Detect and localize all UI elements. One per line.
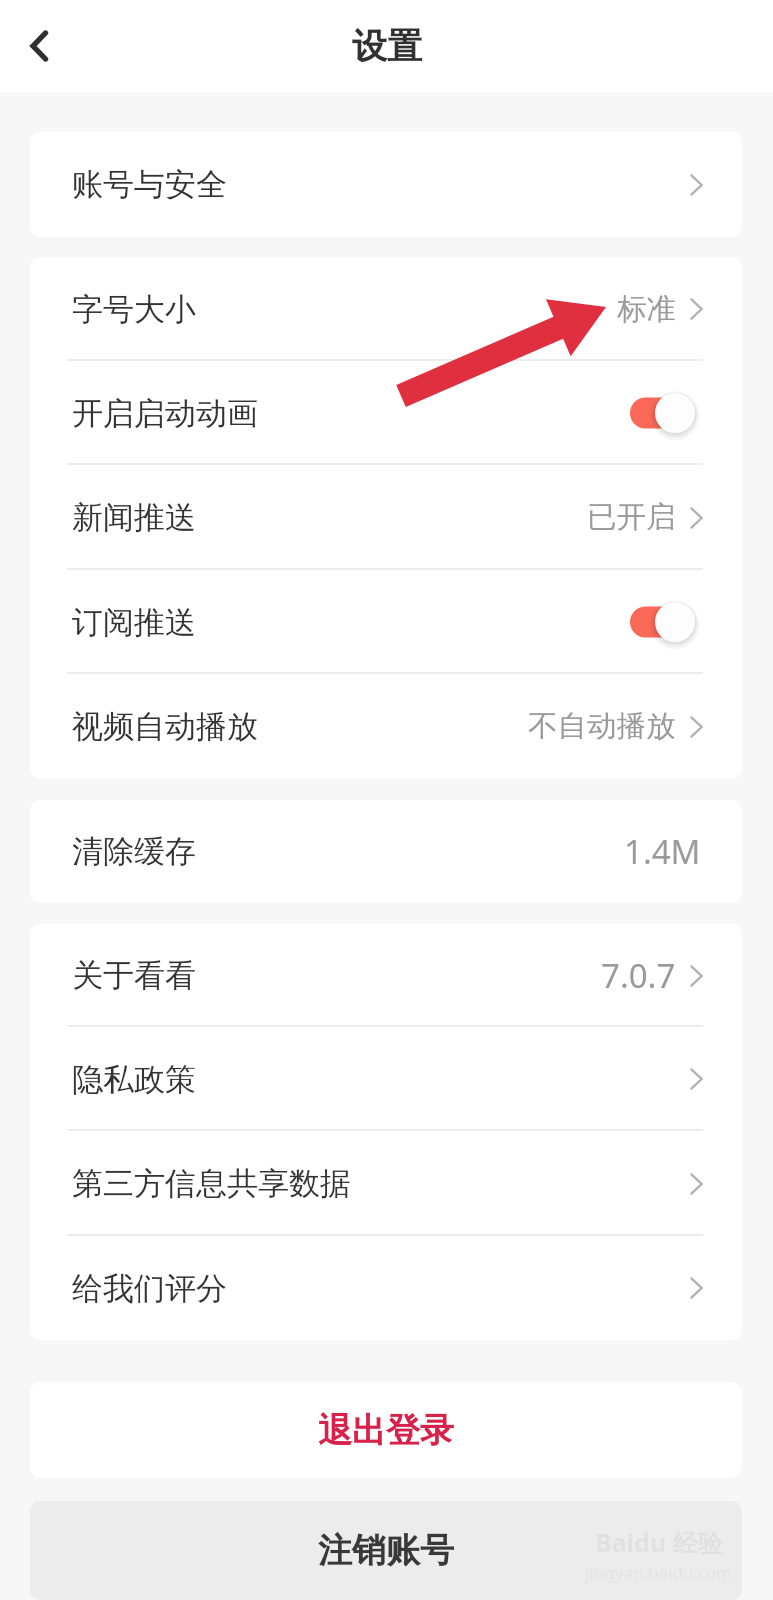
staticText: 清除缓存 xyxy=(72,832,196,871)
button[interactable]: 隐私政策 xyxy=(30,1027,742,1131)
staticText: 账号与安全 xyxy=(72,165,227,204)
button[interactable]: 视频自动播放 xyxy=(30,674,742,779)
button[interactable]: 清除缓存 xyxy=(30,800,742,903)
staticText: Baidu 经验 xyxy=(595,1525,723,1559)
staticText: 标准 xyxy=(617,291,676,328)
staticText: 已开启 xyxy=(587,499,676,536)
staticText: 开启启动动画 xyxy=(72,394,258,433)
staticText: 第三方信息共享数据 xyxy=(72,1164,351,1203)
staticText: 字号大小 xyxy=(72,290,196,329)
staticText: 给我们评分 xyxy=(72,1269,227,1308)
button[interactable]: 订阅推送 xyxy=(30,570,742,674)
button[interactable]: 给我们评分 xyxy=(30,1236,742,1340)
staticText: 新闻推送 xyxy=(72,498,196,537)
button[interactable]: 注销账号 xyxy=(30,1501,742,1600)
button[interactable]: 字号大小 xyxy=(30,257,742,361)
button[interactable]: Toggle xyxy=(630,388,696,438)
button[interactable]: 开启启动动画 xyxy=(30,361,742,465)
button[interactable]: 第三方信息共享数据 xyxy=(30,1131,742,1236)
staticText: 关于看看 xyxy=(72,956,196,995)
staticText: 视频自动播放 xyxy=(72,707,258,746)
staticText: 订阅推送 xyxy=(72,603,196,642)
button[interactable]: 关于看看 xyxy=(30,924,742,1027)
button[interactable]: 退出登录 xyxy=(30,1382,742,1478)
button[interactable]: 账号与安全 xyxy=(30,132,742,237)
staticText: 1.4M xyxy=(624,829,701,874)
staticText: 7.0.7 xyxy=(601,953,676,998)
button[interactable]: Toggle xyxy=(630,597,696,647)
staticText: 隐私政策 xyxy=(72,1060,196,1099)
staticText: 不自动播放 xyxy=(528,708,676,745)
staticText: 退出登录 xyxy=(318,1409,454,1452)
staticText: 注销账号 xyxy=(318,1529,454,1572)
button[interactable]: 新闻推送 xyxy=(30,465,742,570)
staticText: 设置 xyxy=(352,24,422,68)
button[interactable]: Back xyxy=(11,16,71,76)
